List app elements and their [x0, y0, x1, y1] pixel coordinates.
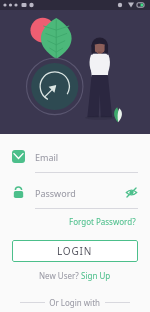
button[interactable]: Forgot Password? — [67, 214, 138, 229]
staticText: Email — [35, 151, 59, 163]
staticText: Forgot Password? — [69, 216, 136, 227]
button[interactable]: Email — [12, 148, 138, 165]
button[interactable]: LOGIN — [12, 240, 138, 262]
button[interactable]: Password — [12, 184, 138, 201]
staticText: Or Login with — [45, 297, 105, 308]
button[interactable]: Toggle password visibility — [125, 186, 138, 199]
staticText: LOGIN — [57, 244, 93, 258]
staticText: Password — [35, 187, 125, 199]
button[interactable]: Sign Up — [81, 270, 111, 281]
staticText: Sign Up — [81, 270, 111, 281]
staticText: New User? — [39, 270, 81, 281]
